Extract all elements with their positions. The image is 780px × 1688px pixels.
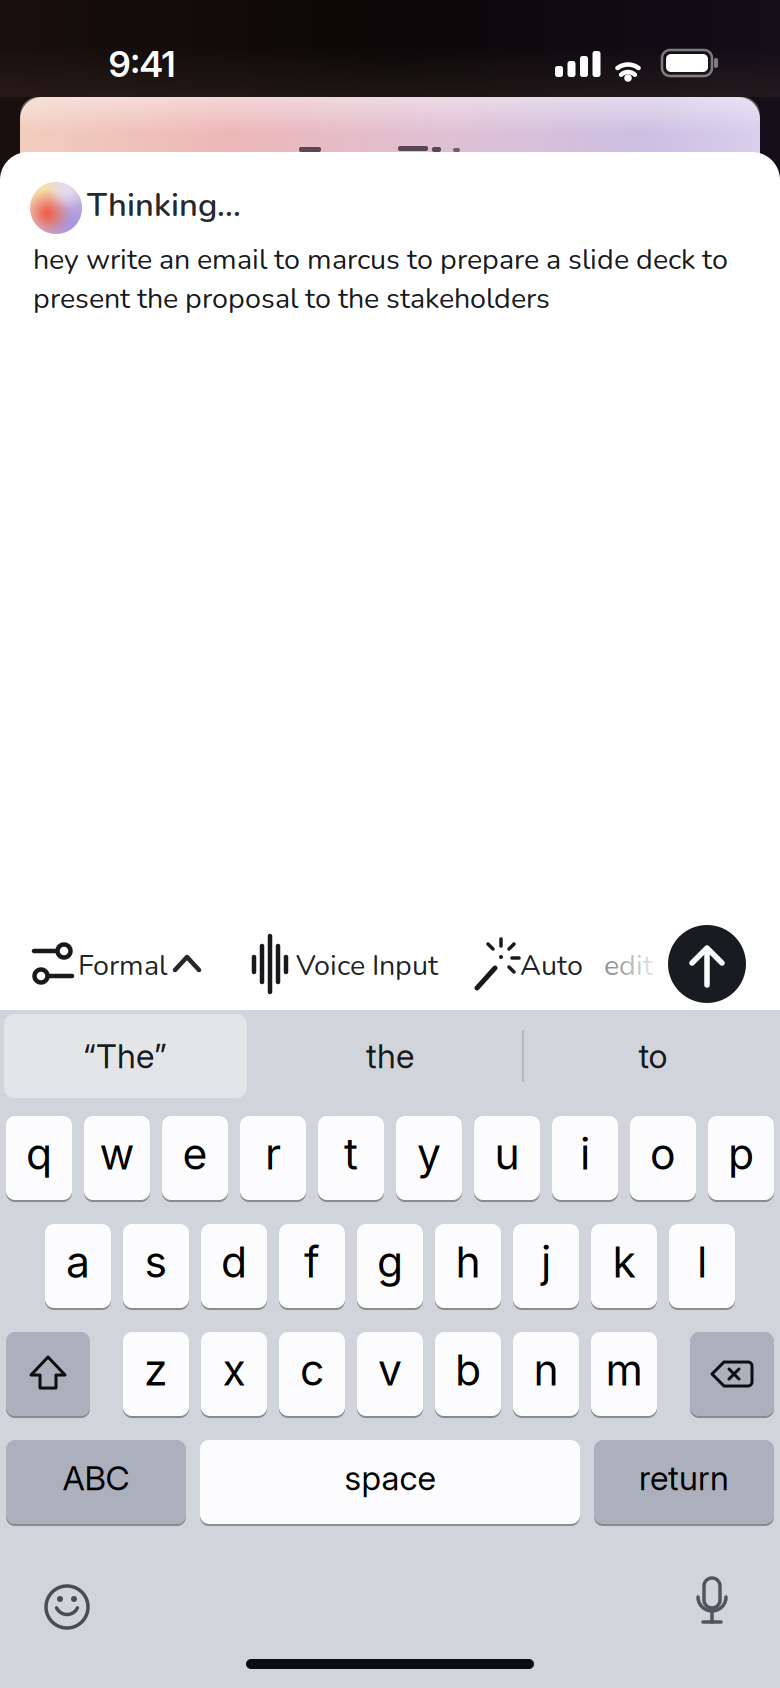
staticText: return [639, 1458, 729, 1498]
staticText: Thinking... [87, 183, 241, 228]
staticText: p [728, 1129, 754, 1179]
staticText: the [366, 1036, 414, 1076]
staticText: j [541, 1237, 551, 1287]
staticText: b [455, 1345, 481, 1395]
staticText: k [612, 1237, 635, 1287]
staticText: ABC [62, 1458, 129, 1498]
staticText: c [300, 1345, 324, 1395]
staticText: a [66, 1237, 90, 1287]
staticText: n [533, 1345, 558, 1395]
staticText: r [265, 1129, 281, 1179]
staticText: y [417, 1129, 441, 1179]
staticText: Auto [520, 946, 590, 985]
staticText: v [378, 1345, 402, 1395]
staticText: i [580, 1129, 590, 1179]
staticText: s [144, 1237, 167, 1287]
staticText: to [638, 1036, 667, 1076]
staticText: edit [604, 946, 653, 985]
staticText: d [221, 1237, 247, 1287]
staticText: “The” [83, 1036, 167, 1076]
staticText: z [144, 1345, 168, 1395]
staticText: u [494, 1129, 519, 1179]
staticText: hey write an email to marcus to prepare … [33, 240, 728, 318]
staticText: h [455, 1237, 480, 1287]
staticText: space [344, 1458, 435, 1498]
staticText: 9:41 [108, 43, 175, 85]
staticText: x [222, 1345, 245, 1395]
staticText: f [304, 1237, 320, 1287]
staticText: w [99, 1129, 134, 1179]
staticText: t [344, 1129, 358, 1179]
staticText: l [697, 1237, 707, 1287]
staticText: g [377, 1237, 403, 1287]
staticText: m [605, 1345, 642, 1395]
staticText: Formal [78, 946, 167, 985]
staticText: Voice Input [296, 946, 438, 985]
staticText: e [182, 1129, 207, 1179]
staticText: q [26, 1129, 52, 1179]
staticText: o [650, 1129, 676, 1179]
